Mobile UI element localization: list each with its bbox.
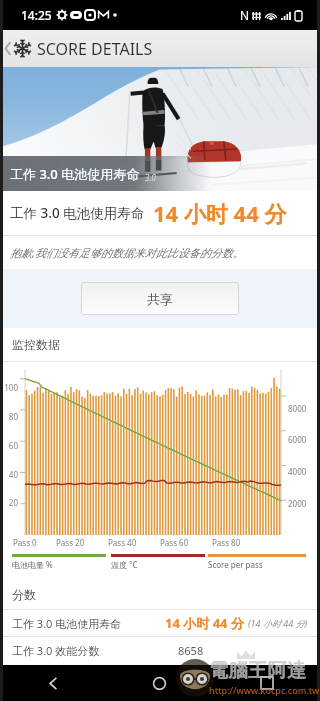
button[interactable]: Recents [213,665,320,701]
staticText: SCORE DETAILS [37,38,153,60]
staticText: 14 小时 44 分 [153,198,287,228]
staticText: http://www.kocpc.com.tw [209,684,320,696]
button[interactable]: Back [3,30,12,67]
staticText: 100 [0,382,18,393]
staticText: 60 [0,440,18,451]
staticText: 抱歉,我们没有足够的数据来对此比设备的分数。 [10,245,244,260]
button[interactable]: 共享 [81,282,239,315]
staticText: 14 小时 44 分 [165,614,244,632]
staticText: 20 [0,497,18,508]
staticText: Pass 20 [56,537,94,548]
staticText: 分数 [12,587,36,602]
staticText: 14:25 [21,7,52,23]
button[interactable]: 工作 3.0 电池使用寿命 [0,610,320,636]
button[interactable]: Back [0,665,106,701]
staticText: 6000 [288,434,318,445]
staticText: 40 [0,469,18,480]
staticText: 電腦王阿達 [209,659,307,683]
button[interactable]: 工作 3.0 效能分数 [0,637,320,663]
staticText: 工作 3.0 电池使用寿命 [12,616,122,631]
staticText: 4000 [288,466,318,477]
staticText: Pass 60 [160,537,198,548]
button[interactable]: Home [106,665,213,701]
staticText: Pass 0 [13,537,47,548]
staticText: 电池电量 % [12,559,53,570]
staticText: 共享 [147,291,173,307]
staticText: 3.0 [145,172,156,183]
staticText: 8000 [288,403,318,414]
staticText: 监控数据 [12,337,60,352]
staticText: 工作 3.0 电池使用寿命 [10,204,145,222]
staticText: 80 [0,411,18,422]
staticText: 工作 3.0 效能分数 [12,643,100,658]
staticText: 8658 [178,643,204,658]
staticText: Score per pass [208,559,263,570]
staticText: 2000 [288,498,318,509]
staticText: 温度 °C [111,559,138,570]
staticText: Pass 40 [108,537,146,548]
staticText: Pass 80 [212,537,250,548]
staticText: 工作 3.0 电池使用寿命 [10,165,140,183]
staticText: (14 小时 44 分) [248,617,308,629]
